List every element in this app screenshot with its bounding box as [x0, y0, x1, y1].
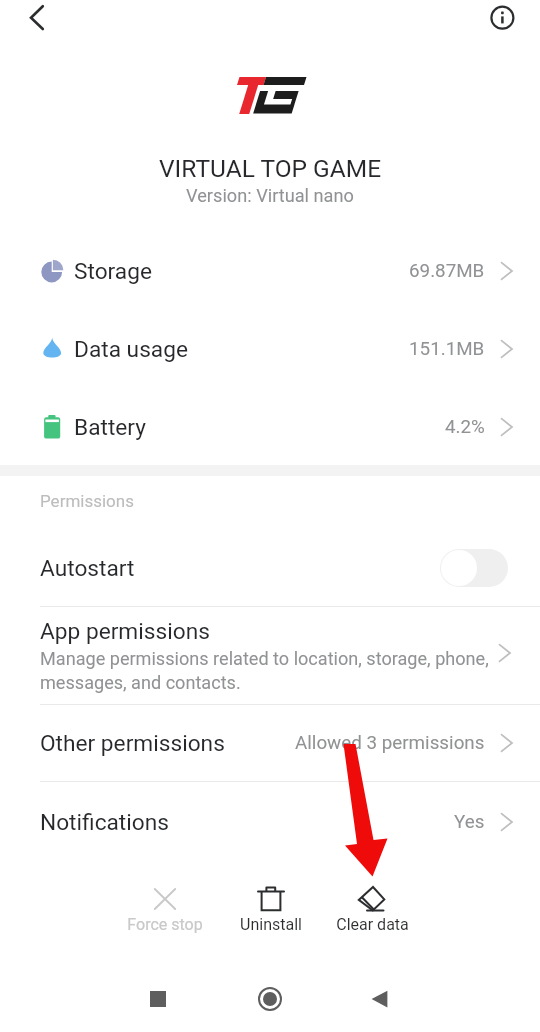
- button[interactable]: Back: [14, 0, 60, 46]
- button[interactable]: App info: [480, 0, 524, 44]
- staticText: 4.2%: [445, 416, 485, 438]
- staticText: Yes: [454, 811, 485, 833]
- staticText: Autostart: [40, 555, 135, 582]
- button[interactable]: Battery: [0, 388, 540, 466]
- button[interactable]: Home: [246, 975, 294, 1023]
- staticText: Permissions: [40, 491, 134, 511]
- button[interactable]: Recent apps: [134, 975, 182, 1023]
- staticText: Allowed 3 permissions: [295, 732, 485, 754]
- button[interactable]: Notifications: [0, 784, 540, 860]
- staticText: 151.1MB: [409, 338, 485, 360]
- button[interactable]: Storage: [0, 232, 540, 310]
- staticText: Battery: [74, 414, 146, 441]
- button[interactable]: Force stop: [105, 882, 225, 940]
- staticText: VIRTUAL TOP GAME: [159, 154, 382, 183]
- button[interactable]: Uninstall: [211, 882, 331, 940]
- staticText: Force stop: [127, 915, 203, 934]
- staticText: Other permissions: [40, 730, 225, 757]
- staticText: Storage: [74, 258, 152, 285]
- button[interactable]: Data usage: [0, 310, 540, 388]
- staticText: Manage permissions related to location, …: [40, 648, 489, 693]
- staticText: 69.87MB: [409, 260, 485, 282]
- staticText: Data usage: [74, 336, 188, 363]
- staticText: Clear data: [336, 915, 409, 934]
- button[interactable]: Back: [356, 975, 404, 1023]
- staticText: App permissions: [40, 618, 210, 645]
- button[interactable]: Other permissions: [0, 705, 540, 781]
- button[interactable]: App permissions: [0, 607, 540, 704]
- staticText: Notifications: [40, 809, 169, 836]
- button[interactable]: Clear data: [312, 882, 432, 940]
- staticText: Uninstall: [240, 915, 302, 934]
- staticText: Version: Virtual nano: [186, 185, 354, 206]
- button[interactable]: Autostart: [0, 530, 540, 606]
